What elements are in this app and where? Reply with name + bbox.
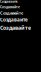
staticText: Создавайте — [0, 0, 18, 4]
staticText: Создавайте — [0, 17, 28, 23]
staticText: Создавайте — [0, 24, 31, 31]
staticText: Создавайте — [0, 5, 20, 9]
staticText: Создавайте — [0, 10, 23, 16]
